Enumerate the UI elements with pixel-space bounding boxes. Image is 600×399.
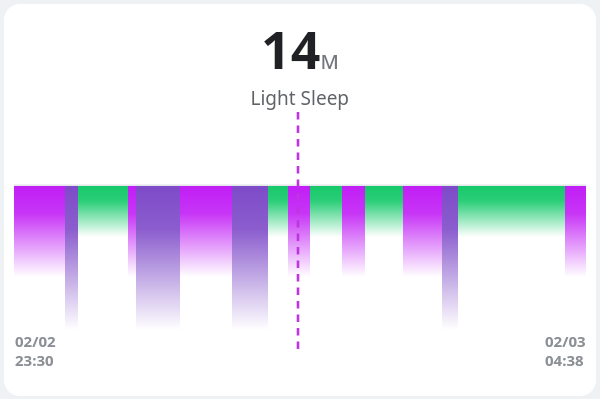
button[interactable]: Sleep stages chart, 14 minutes light sle… (0, 0, 600, 399)
